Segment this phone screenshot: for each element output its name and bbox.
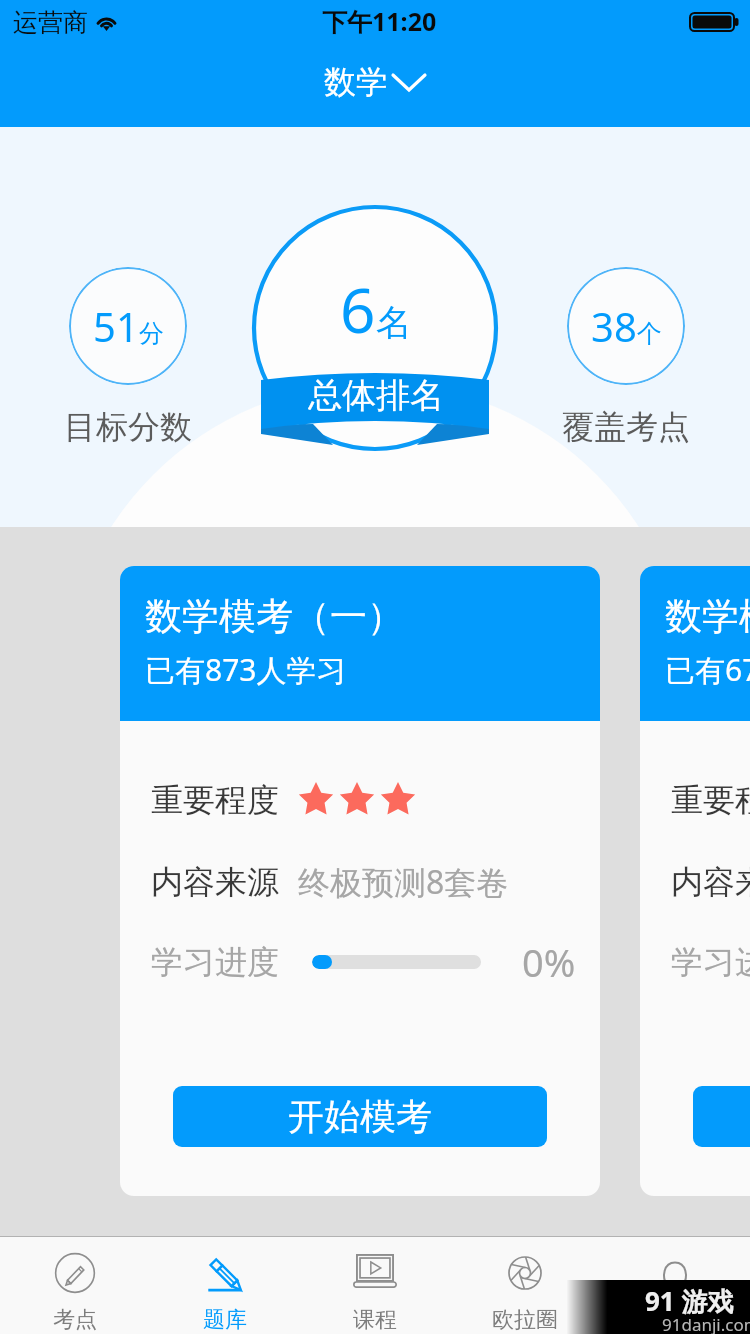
staticText: 总体排名 bbox=[308, 374, 444, 417]
staticText: 个 bbox=[637, 318, 662, 349]
button[interactable]: Profile bbox=[600, 1237, 750, 1334]
staticText: 覆盖考点 bbox=[562, 407, 690, 447]
button[interactable]: Question bank bbox=[150, 1237, 300, 1334]
staticText: 数学模考（二） bbox=[665, 593, 750, 640]
button[interactable]: Courses bbox=[300, 1237, 450, 1334]
button[interactable]: Euler circle bbox=[450, 1237, 600, 1334]
staticText: 目标分数 bbox=[64, 407, 192, 447]
button[interactable]: 数学模考（一） bbox=[120, 566, 600, 1196]
staticText: 题库 bbox=[203, 1306, 247, 1334]
staticText: 91danji.com bbox=[662, 1313, 750, 1334]
staticText: 名 bbox=[376, 300, 412, 345]
staticText: 内容来源 bbox=[151, 862, 279, 902]
staticText: 38 bbox=[591, 299, 637, 353]
staticText: 考点 bbox=[53, 1306, 97, 1334]
staticText: 课程 bbox=[353, 1306, 397, 1334]
staticText: 6 bbox=[340, 267, 376, 351]
staticText: 学习进度 bbox=[671, 942, 750, 982]
button[interactable]: 开始模考 bbox=[693, 1086, 750, 1147]
button[interactable]: 数学模考（二） bbox=[640, 566, 750, 1196]
staticText: 0% bbox=[522, 936, 576, 988]
staticText: 欧拉圈 bbox=[492, 1306, 558, 1334]
button[interactable]: 数学 bbox=[324, 62, 427, 102]
staticText: 数学模考（一） bbox=[145, 593, 404, 640]
staticText: 数学 bbox=[324, 62, 388, 102]
button[interactable]: Exam points bbox=[0, 1237, 150, 1334]
staticText: 已有672人学习 bbox=[665, 649, 750, 690]
staticText: 运营商 bbox=[13, 7, 88, 38]
staticText: 重要程度 bbox=[671, 780, 750, 820]
staticText: 内容来源 bbox=[671, 862, 750, 902]
staticText: 开始模考 bbox=[288, 1094, 432, 1139]
staticText: 重要程度 bbox=[151, 780, 279, 820]
staticText: 我的 bbox=[653, 1306, 697, 1334]
staticText: 已有873人学习 bbox=[145, 649, 347, 690]
staticText: 91 游戏 bbox=[645, 1283, 734, 1319]
button[interactable]: 开始模考 bbox=[173, 1086, 547, 1147]
staticText: 学习进度 bbox=[151, 942, 279, 982]
staticText: 下午11:20 bbox=[322, 4, 437, 38]
staticText: 分 bbox=[139, 318, 164, 349]
staticText: 终极预测8套卷 bbox=[298, 860, 509, 904]
staticText: 51 bbox=[93, 299, 139, 353]
